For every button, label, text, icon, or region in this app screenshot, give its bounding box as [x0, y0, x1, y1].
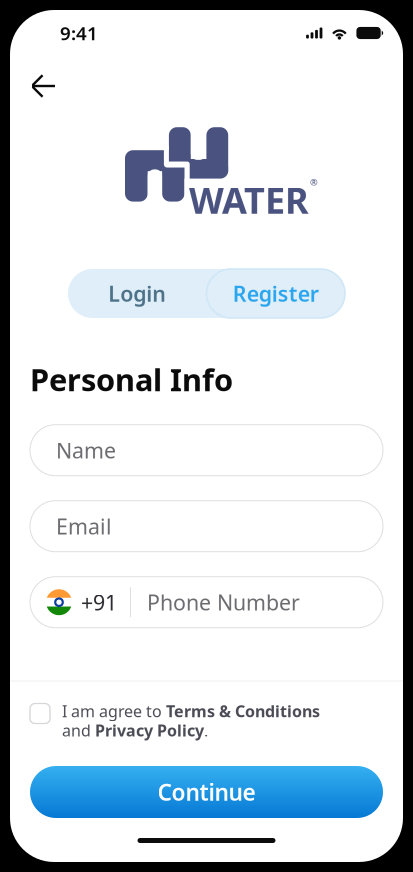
button[interactable]: Register [206, 269, 345, 318]
staticText: ® [310, 176, 318, 188]
staticText: Phone Number [147, 588, 300, 616]
staticText: Email [56, 512, 112, 540]
button[interactable]: Login [68, 269, 206, 318]
staticText: +91 [81, 588, 117, 616]
staticText: Personal Info [30, 359, 233, 400]
staticText: Continue [157, 777, 255, 807]
staticText: 9:41 [60, 21, 98, 45]
staticText: WATER [189, 176, 309, 224]
staticText: and Privacy Policy. [62, 720, 208, 741]
staticText: Name [56, 436, 116, 464]
button[interactable]: Continue [30, 766, 383, 818]
staticText: Login [108, 279, 166, 308]
staticText: Register [233, 279, 319, 308]
button[interactable]: Back [30, 67, 74, 105]
button[interactable]: Agree to terms and conditions [30, 696, 50, 723]
staticText: I am agree to Terms & Conditions [62, 700, 320, 722]
